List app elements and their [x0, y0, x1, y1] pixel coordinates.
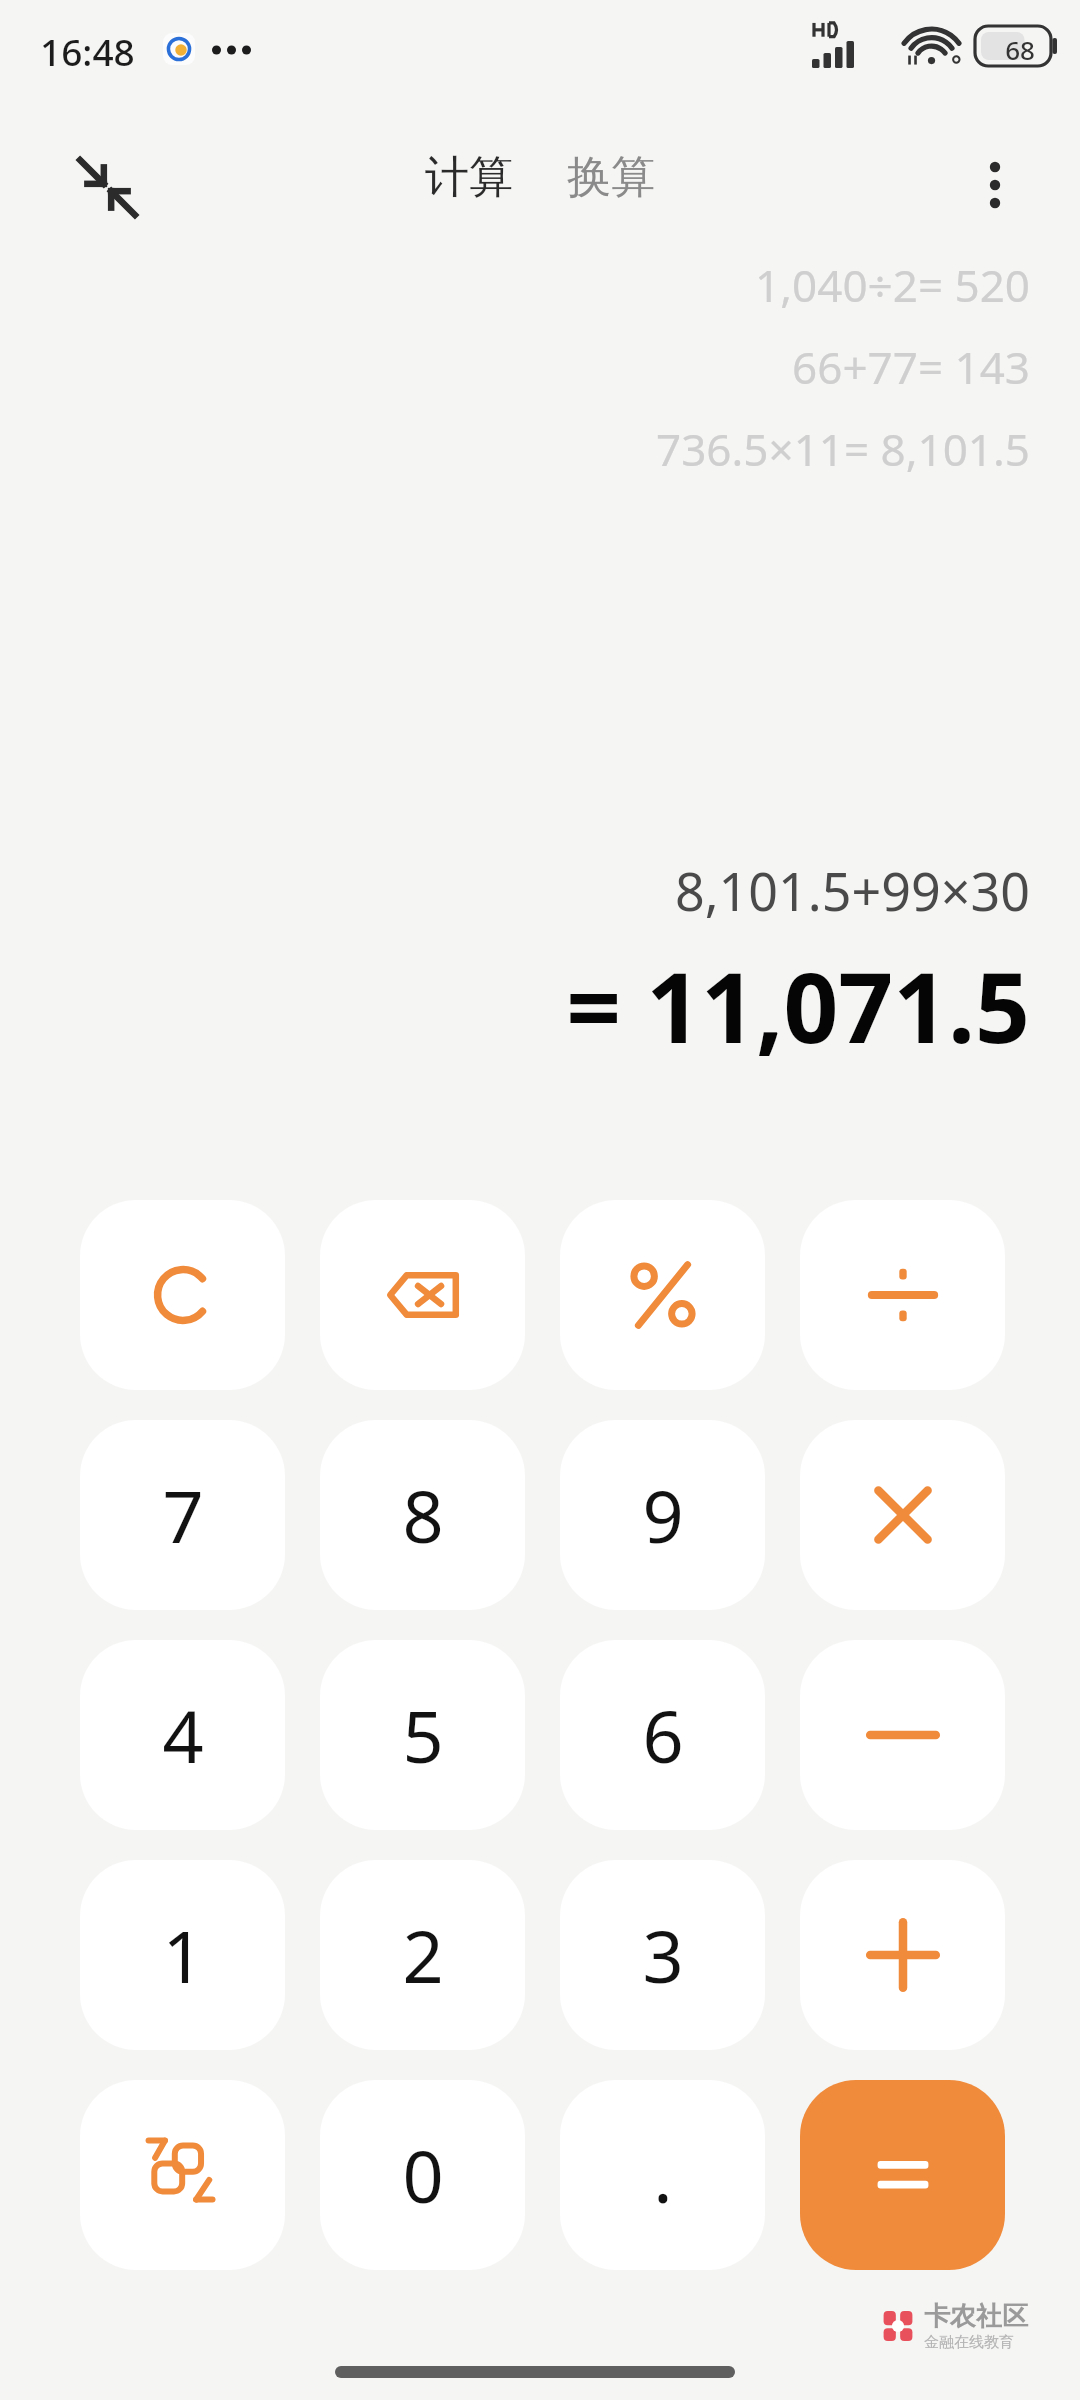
staticText: = 11,071.5 [566, 940, 1030, 1071]
button[interactable]: 3 [560, 1860, 765, 2050]
staticText: 1,040÷2= 520 [755, 255, 1030, 315]
button[interactable]: 66+77= 143 [792, 337, 1030, 397]
button[interactable]: 1,040÷2= 520 [755, 255, 1030, 315]
button[interactable]: 4 [80, 1640, 285, 1830]
button[interactable]: Divide [800, 1200, 1005, 1390]
staticText: 16:48 [40, 26, 135, 76]
button[interactable]: Backspace [320, 1200, 525, 1390]
button[interactable]: Equals [800, 2080, 1005, 2270]
staticText: 66+77= 143 [792, 337, 1030, 397]
button[interactable]: 1 [80, 1860, 285, 2050]
staticText: 计算 [425, 150, 513, 205]
button[interactable]: 换算 [553, 140, 669, 215]
staticText: 8,101.5+99×30 [674, 855, 1030, 926]
button[interactable]: Percent [560, 1200, 765, 1390]
button[interactable]: . [560, 2080, 765, 2270]
button[interactable]: 9 [560, 1420, 765, 1610]
staticText: . [653, 2126, 673, 2224]
button[interactable]: Minus [800, 1640, 1005, 1830]
button[interactable]: 5 [320, 1640, 525, 1830]
staticText: 8 [402, 1466, 444, 1564]
button[interactable]: 736.5×11= 8,101.5 [656, 419, 1030, 479]
button[interactable]: 计算 [411, 140, 527, 215]
staticText: 2 [402, 1906, 444, 2004]
button[interactable]: Plus [800, 1860, 1005, 2050]
staticText: 9 [642, 1466, 684, 1564]
staticText: 4 [162, 1686, 204, 1784]
staticText: 1 [162, 1906, 204, 2004]
button[interactable]: Multiply [800, 1420, 1005, 1610]
staticText: 卡农社区 [924, 2300, 1028, 2333]
staticText: 7 [162, 1466, 204, 1564]
staticText: 6 [642, 1686, 684, 1784]
staticText: 0 [402, 2126, 444, 2224]
staticText: 换算 [567, 150, 655, 205]
button[interactable]: More options [945, 135, 1045, 235]
staticText: 3 [642, 1906, 684, 2004]
button[interactable]: 0 [320, 2080, 525, 2270]
button[interactable]: Scientific [80, 2080, 285, 2270]
button[interactable]: Collapse [55, 135, 160, 240]
button[interactable]: 6 [560, 1640, 765, 1830]
button[interactable]: Clear [80, 1200, 285, 1390]
button[interactable]: 2 [320, 1860, 525, 2050]
button[interactable]: 7 [80, 1420, 285, 1610]
staticText: 金融在线教育 [924, 2333, 1014, 2352]
button[interactable]: 8 [320, 1420, 525, 1610]
staticText: 68 [995, 32, 1045, 67]
staticText: 5 [402, 1686, 444, 1784]
staticText: 736.5×11= 8,101.5 [656, 419, 1030, 479]
